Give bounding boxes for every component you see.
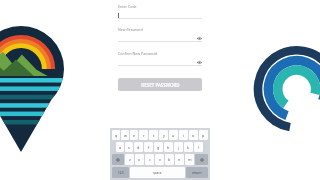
staticText: q: [115, 133, 118, 138]
button[interactable]: b: [165, 154, 174, 165]
button[interactable]: space: [130, 167, 185, 178]
staticText: m: [188, 157, 192, 162]
button[interactable]: Backspace: [195, 154, 208, 165]
staticText: Confirm New Password: [118, 51, 158, 56]
staticText: c: [149, 157, 151, 162]
button[interactable]: m: [185, 154, 194, 165]
staticText: y: [163, 133, 165, 138]
staticText: i: [183, 133, 184, 138]
staticText: return: [192, 171, 202, 175]
staticText: space: [153, 171, 162, 175]
button[interactable]: Shift: [112, 154, 124, 165]
staticText: New Password: [118, 27, 143, 32]
button[interactable]: t: [149, 130, 158, 140]
staticText: x: [138, 157, 141, 162]
button[interactable]: return: [186, 167, 208, 178]
staticText: u: [172, 133, 175, 138]
staticText: Enter Code: [118, 4, 137, 9]
button[interactable]: r: [139, 130, 148, 140]
button[interactable]: k: [184, 142, 193, 152]
button[interactable]: i: [179, 130, 188, 140]
staticText: a: [119, 145, 122, 150]
button[interactable]: u: [169, 130, 178, 140]
staticText: r: [143, 133, 145, 138]
button[interactable]: v: [155, 154, 164, 165]
button[interactable]: e: [130, 130, 138, 140]
button[interactable]: New Password: [118, 27, 202, 42]
button[interactable]: Confirm New Password: [118, 51, 202, 66]
button[interactable]: n: [175, 154, 184, 165]
staticText: s: [128, 145, 130, 150]
other: Mountain pin logo: [0, 26, 64, 152]
button[interactable]: q: [112, 130, 120, 140]
button[interactable]: h: [164, 142, 173, 152]
staticText: v: [159, 157, 161, 162]
button[interactable]: a: [116, 142, 124, 152]
other: Circles logo: [252, 22, 320, 156]
staticText: t: [153, 133, 155, 138]
staticText: 123: [118, 171, 124, 175]
staticText: k: [187, 145, 190, 150]
button[interactable]: x: [135, 154, 144, 165]
button[interactable]: g: [154, 142, 163, 152]
button[interactable]: d: [134, 142, 143, 152]
staticText: g: [157, 145, 160, 150]
button[interactable]: j: [174, 142, 183, 152]
button[interactable]: l: [194, 142, 203, 152]
button[interactable]: Enter Code: [118, 4, 202, 19]
staticText: f: [148, 145, 150, 150]
button[interactable]: c: [145, 154, 154, 165]
button[interactable]: f: [144, 142, 153, 152]
staticText: n: [178, 157, 181, 162]
staticText: j: [178, 145, 179, 150]
button[interactable]: 123: [112, 167, 129, 178]
button[interactable]: y: [159, 130, 168, 140]
staticText: z: [129, 157, 131, 162]
button[interactable]: p: [199, 130, 208, 140]
staticText: e: [133, 133, 136, 138]
staticText: l: [198, 145, 199, 150]
button[interactable]: o: [189, 130, 198, 140]
staticText: w: [124, 133, 127, 138]
staticText: d: [137, 145, 140, 150]
staticText: o: [192, 133, 195, 138]
button[interactable]: s: [125, 142, 133, 152]
button[interactable]: w: [121, 130, 129, 140]
staticText: RESET PASSWORD: [141, 82, 180, 88]
button[interactable]: RESET PASSWORD: [118, 78, 202, 91]
staticText: b: [168, 157, 171, 162]
staticText: p: [202, 133, 205, 138]
staticText: h: [167, 145, 170, 150]
button[interactable]: z: [125, 154, 134, 165]
